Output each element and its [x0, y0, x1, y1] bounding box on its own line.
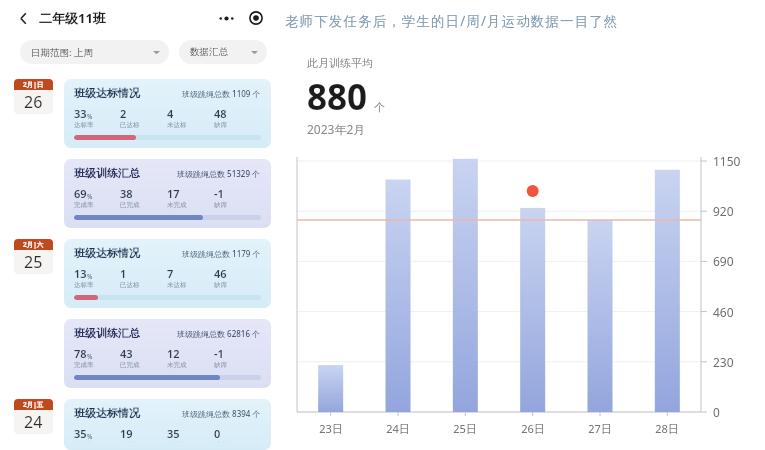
staticText: 23日	[319, 421, 343, 436]
button[interactable]: 班级达标情况	[64, 79, 271, 148]
staticText: 班级跳绳总数 1109 个	[182, 88, 261, 99]
staticText: 27日	[588, 421, 612, 436]
staticText: 达标率	[74, 281, 94, 289]
staticText: 1150	[713, 153, 741, 169]
staticText: 35	[167, 426, 180, 441]
staticText: 达标率	[74, 441, 94, 442]
staticText: 26日	[521, 421, 545, 436]
staticText: 完成率	[74, 361, 94, 369]
staticText: 未达标	[167, 441, 187, 442]
staticText: 69	[74, 186, 87, 201]
staticText: 未达标	[167, 281, 187, 289]
button[interactable]: 班级训练汇总	[64, 159, 271, 228]
staticText: 230	[713, 354, 734, 370]
staticText: 24	[24, 411, 43, 433]
staticText: 数据汇总	[190, 46, 228, 58]
staticText: 达标率	[74, 121, 94, 129]
staticText: %	[87, 352, 93, 361]
staticText: 班级达标情况	[74, 406, 140, 420]
staticText: 完成率	[74, 201, 94, 209]
staticText: -1	[214, 186, 224, 201]
staticText: 班级跳绳总数 51329 个	[177, 168, 261, 179]
staticText: 未达标	[167, 121, 187, 129]
button[interactable]: 班级达标情况	[64, 399, 271, 450]
staticText: 班级达标情况	[74, 246, 140, 260]
staticText: 缺席	[214, 281, 227, 289]
staticText: 未完成	[167, 201, 187, 209]
staticText: 日期范围: 上周	[31, 46, 94, 59]
staticText: 25	[24, 251, 43, 273]
staticText: 24日	[386, 421, 410, 436]
staticText: 78	[74, 346, 87, 361]
staticText: 班级跳绳总数 62816 个	[177, 328, 261, 339]
staticText: 班级训练汇总	[74, 166, 140, 180]
staticText: 880	[307, 73, 368, 121]
staticText: %	[87, 272, 93, 281]
staticText: 28日	[655, 421, 679, 436]
staticText: %	[87, 432, 93, 441]
button[interactable]: 日期范围: 上周	[20, 40, 169, 64]
button[interactable]: Target mode	[245, 7, 267, 29]
staticText: 2月|日	[23, 80, 44, 89]
staticText: 二年级11班	[39, 9, 106, 27]
staticText: 班级达标情况	[74, 86, 140, 100]
staticText: 920	[713, 203, 734, 219]
staticText: 0	[214, 426, 221, 441]
staticText: 0	[713, 404, 720, 420]
staticText: 33	[74, 106, 87, 121]
staticText: 4	[167, 106, 174, 121]
button[interactable]: More options	[215, 7, 237, 29]
staticText: 此月训练平均	[307, 56, 373, 70]
staticText: 690	[713, 253, 734, 269]
staticText: 48	[214, 106, 227, 121]
staticText: 缺席	[214, 121, 227, 129]
staticText: 35	[74, 426, 87, 441]
staticText: 缺席	[214, 361, 227, 369]
staticText: -1	[214, 346, 224, 361]
staticText: 38	[120, 186, 133, 201]
staticText: 1	[120, 266, 127, 281]
button[interactable]: Back	[14, 9, 32, 27]
staticText: 26	[24, 91, 43, 113]
staticText: 已达标	[120, 441, 140, 442]
staticText: 老师下发任务后，学生的日/周/月运动数据一目了然	[285, 12, 619, 30]
staticText: %	[87, 192, 93, 201]
staticText: 班级跳绳总数 8394 个	[182, 408, 261, 419]
button[interactable]: 班级训练汇总	[64, 319, 271, 388]
staticText: 13	[74, 266, 87, 281]
staticText: 25日	[453, 421, 477, 436]
staticText: 2023年2月	[307, 121, 366, 137]
staticText: 已达标	[120, 121, 140, 129]
staticText: 2月|五	[23, 400, 44, 409]
staticText: 已完成	[120, 361, 140, 369]
staticText: %	[87, 112, 93, 121]
staticText: 2月|六	[23, 240, 44, 249]
staticText: 班级跳绳总数 1179 个	[182, 248, 261, 259]
staticText: 已完成	[120, 201, 140, 209]
staticText: 缺席	[214, 441, 227, 442]
staticText: 12	[167, 346, 180, 361]
button[interactable]: 班级达标情况	[64, 239, 271, 308]
staticText: 缺席	[214, 201, 227, 209]
staticText: 已达标	[120, 281, 140, 289]
staticText: 2	[120, 106, 127, 121]
button[interactable]: 数据汇总	[179, 40, 267, 64]
staticText: 460	[713, 304, 734, 320]
staticText: 个	[374, 100, 385, 114]
staticText: 班级训练汇总	[74, 326, 140, 340]
staticText: 43	[120, 346, 133, 361]
staticText: 46	[214, 266, 227, 281]
staticText: 17	[167, 186, 180, 201]
staticText: 19	[120, 426, 133, 441]
staticText: 7	[167, 266, 174, 281]
staticText: 未完成	[167, 361, 187, 369]
